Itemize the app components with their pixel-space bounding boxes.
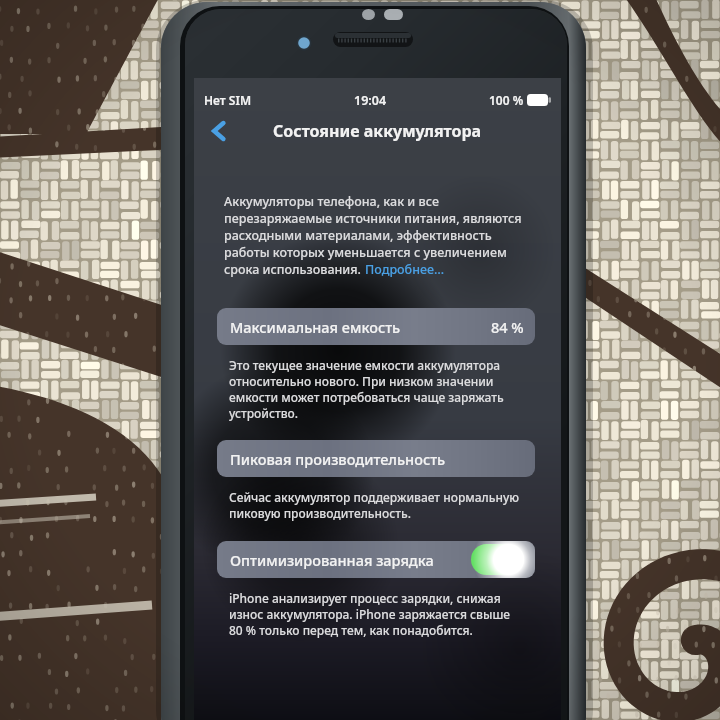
staticText: 84 %	[491, 317, 524, 337]
staticText: перезаряжаемые источники питания, являют…	[224, 210, 522, 227]
staticText: Оптимизированная зарядка	[230, 550, 434, 570]
button[interactable]: Пиковая производительность	[217, 440, 535, 477]
button[interactable]: Оптимизированная зарядка	[471, 544, 524, 575]
staticText: Максимальная емкость	[230, 317, 401, 337]
staticText: Подробнее…	[365, 261, 445, 278]
button[interactable]: Оптимизированная зарядка	[217, 541, 535, 578]
staticText: Пиковая производительность	[230, 449, 446, 469]
button[interactable]: Назад	[202, 114, 236, 148]
staticText: Состояние аккумулятора	[273, 120, 482, 142]
staticText: емкости может потребоваться чаще заряжат…	[229, 389, 504, 405]
staticText: пиковую производительность.	[229, 505, 412, 521]
staticText: iPhone анализирует процесс зарядки, сниж…	[229, 590, 501, 606]
staticText: работы которых уменьшается с увеличением	[224, 244, 507, 261]
staticText: Аккумуляторы телефона, как и все	[224, 193, 439, 210]
staticText: относительно нового. При низком значении	[229, 373, 494, 389]
staticText: устройство.	[229, 405, 299, 421]
staticText: 100 %	[489, 92, 524, 108]
staticText: Это текущее значение емкости аккумулятор…	[229, 357, 501, 373]
staticText: срока использования.	[224, 261, 365, 278]
button[interactable]: Максимальная емкость	[217, 308, 535, 345]
staticText: Сейчас аккумулятор поддерживает нормальн…	[229, 489, 520, 505]
staticText: Нет SIM	[204, 92, 252, 108]
staticText: износ аккумулятора. iPhone заряжается св…	[229, 606, 511, 622]
staticText: расходными материалами, эффективность	[224, 227, 492, 244]
staticText: 80 % только перед тем, как понадобится.	[229, 622, 473, 638]
staticText: 19:04	[354, 92, 387, 109]
